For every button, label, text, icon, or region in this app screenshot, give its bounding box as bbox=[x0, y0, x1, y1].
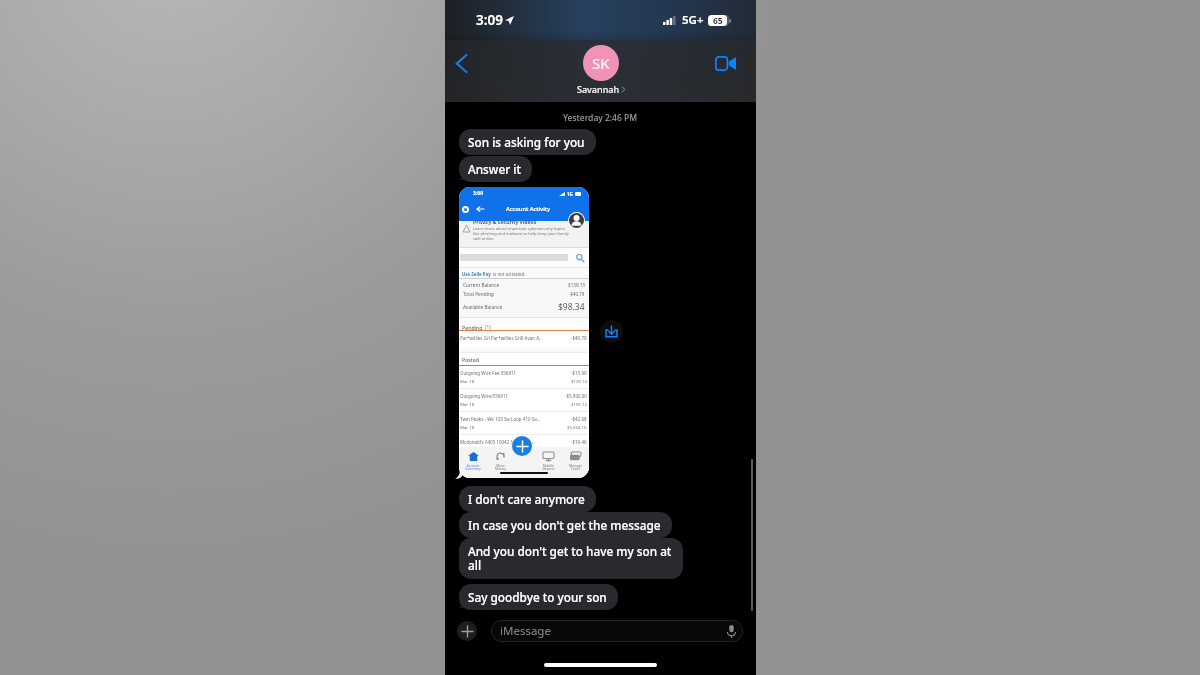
staticText: Mcdonald's F405 10042 Sw Anova... bbox=[460, 439, 568, 445]
staticText: Mar 18 bbox=[460, 401, 475, 407]
staticText: Available Balance bbox=[463, 304, 503, 311]
staticText: Learn more about important cybersecurity… bbox=[473, 226, 571, 241]
staticText: $98.34 bbox=[558, 301, 585, 313]
staticText: iMessage bbox=[500, 623, 551, 639]
staticText: Posted bbox=[462, 356, 480, 363]
staticText: 3:09 bbox=[473, 190, 483, 197]
staticText: -$40.79 bbox=[569, 291, 585, 297]
button[interactable]: Answer it bbox=[459, 156, 532, 182]
button[interactable]: FaceTime video call bbox=[711, 49, 739, 77]
button[interactable]: In case you don't get the message bbox=[459, 512, 672, 538]
button[interactable]: Say goodbye to your son bbox=[459, 584, 618, 610]
button[interactable]: Move Money bbox=[488, 449, 512, 471]
button[interactable]: Manage Cards bbox=[563, 449, 587, 471]
staticText: -$40.79 bbox=[571, 335, 587, 341]
staticText: I don't care anymore bbox=[468, 491, 585, 507]
staticText: Twin Peaks - We 103 Sw Loop 410 Sa... bbox=[460, 416, 568, 422]
staticText: Privacy & Security Videos bbox=[473, 221, 537, 225]
button[interactable]: iMessage bbox=[491, 620, 743, 642]
staticText: Mar 18 bbox=[460, 447, 475, 453]
staticText: Answer it bbox=[468, 161, 521, 177]
staticText: Total Pending bbox=[463, 291, 494, 298]
staticText: Savannah bbox=[577, 83, 620, 95]
staticText: Mobile Deposit bbox=[542, 463, 555, 471]
button[interactable]: And you don't get to have my son at all bbox=[459, 538, 683, 579]
button[interactable]: Add attachment bbox=[457, 621, 477, 641]
staticText: Manage Cards bbox=[569, 463, 582, 471]
staticText: -$19.46 bbox=[571, 439, 587, 445]
staticText: $155.12 bbox=[571, 401, 587, 407]
button[interactable]: 3:09 bbox=[459, 187, 589, 478]
staticText: $5,654.10 bbox=[567, 424, 587, 430]
staticText: Account Summary bbox=[465, 463, 481, 471]
button[interactable]: Download image bbox=[600, 320, 623, 343]
staticText: $139.13 bbox=[571, 378, 587, 384]
staticText: In case you don't get the message bbox=[468, 517, 661, 533]
staticText: -$42.68 bbox=[571, 416, 587, 422]
staticText: Mar 18 bbox=[460, 424, 475, 430]
staticText: Current Balance bbox=[463, 282, 500, 289]
staticText: $139.13 bbox=[568, 282, 585, 288]
staticText: 65 bbox=[713, 15, 723, 26]
staticText: And you don't get to have my son at all bbox=[468, 543, 672, 574]
staticText: is not activated. bbox=[493, 271, 526, 277]
button[interactable]: Back bbox=[447, 49, 475, 77]
staticText: Account Activity bbox=[506, 205, 551, 213]
staticText: Mar 18 bbox=[460, 378, 475, 384]
staticText: Yesterday 2:46 PM bbox=[563, 112, 638, 124]
staticText: $5,696.78 bbox=[567, 447, 587, 453]
staticText: Outgoing Wire Fee 556911 bbox=[460, 370, 568, 376]
button[interactable]: Add bbox=[512, 436, 532, 456]
staticText: Use Zelle Pay bbox=[462, 271, 491, 277]
staticText: SK bbox=[592, 53, 610, 73]
staticText: -$5,900.00 bbox=[565, 393, 587, 399]
button[interactable]: Son is asking for you bbox=[459, 129, 596, 155]
button[interactable]: SK bbox=[577, 45, 625, 95]
staticText: Par*willies Grl Par*willies Grill Avan A… bbox=[460, 335, 568, 341]
staticText: 3:09 bbox=[476, 11, 503, 29]
staticText: -$15.99 bbox=[571, 370, 587, 376]
staticText: Pending bbox=[462, 324, 483, 331]
button[interactable]: I don't care anymore bbox=[459, 486, 596, 512]
staticText: Say goodbye to your son bbox=[468, 589, 607, 605]
button[interactable]: Account Summary bbox=[461, 449, 485, 471]
staticText: (1) bbox=[485, 324, 491, 331]
staticText: Outgoing Wire/556911 bbox=[460, 393, 562, 399]
staticText: 1G bbox=[567, 191, 573, 197]
staticText: Son is asking for you bbox=[468, 134, 585, 150]
button[interactable]: Mobile Deposit bbox=[536, 449, 560, 471]
staticText: Move Money bbox=[495, 463, 506, 471]
staticText: 5G+ bbox=[682, 12, 704, 28]
